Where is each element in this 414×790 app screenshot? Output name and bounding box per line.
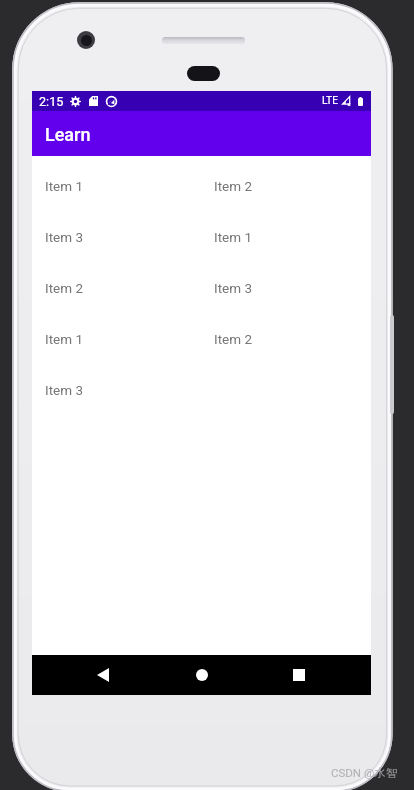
staticText: Item 2 — [214, 331, 253, 347]
staticText: Learn — [45, 124, 91, 145]
staticText: Item 1 — [214, 229, 253, 245]
button[interactable]: Item 1 — [32, 160, 201, 211]
button[interactable]: Item 1 — [201, 211, 371, 262]
button[interactable]: Item 2 — [201, 313, 371, 364]
staticText: Item 3 — [45, 229, 84, 245]
staticText: Item 2 — [45, 280, 84, 296]
staticText: Item 1 — [45, 178, 84, 194]
staticText: Item 1 — [45, 331, 84, 347]
button[interactable]: Back — [79, 655, 127, 695]
button[interactable]: Item 2 — [201, 160, 371, 211]
staticText: CSDN @水智 — [331, 766, 398, 780]
button[interactable]: Home — [178, 655, 226, 695]
button[interactable]: Item 1 — [32, 313, 201, 364]
button[interactable]: Recents — [275, 655, 323, 695]
staticText: LTE — [322, 95, 338, 107]
button[interactable]: Item 3 — [201, 262, 371, 313]
staticText: Item 3 — [45, 382, 84, 398]
staticText: Item 3 — [214, 280, 253, 296]
staticText: 2:15 — [39, 94, 64, 109]
staticText: Item 2 — [214, 178, 253, 194]
button[interactable]: Item 3 — [32, 364, 201, 415]
button[interactable]: Item 3 — [32, 211, 201, 262]
button[interactable]: Item 2 — [32, 262, 201, 313]
